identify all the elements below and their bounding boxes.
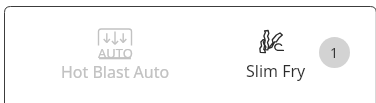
staticText: Hot Blast Auto bbox=[61, 61, 170, 83]
button[interactable]: AUTO bbox=[35, 7, 195, 103]
staticText: AUTO bbox=[98, 44, 133, 62]
button[interactable]: 1 bbox=[319, 37, 350, 68]
staticText: Slim Fry bbox=[246, 60, 306, 82]
staticText: 1 bbox=[330, 43, 339, 62]
button[interactable]: Slim Fry bbox=[195, 7, 356, 103]
